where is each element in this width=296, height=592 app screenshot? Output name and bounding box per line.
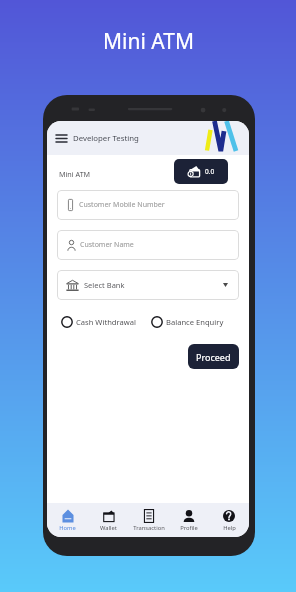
- button[interactable]: Select Bank: [57, 270, 239, 300]
- staticText: Mini ATM: [103, 27, 194, 56]
- button[interactable]: Menu: [53, 130, 69, 146]
- staticText: Select Bank: [84, 280, 125, 290]
- button[interactable]: Proceed: [188, 344, 239, 369]
- staticText: Cash Withdrawal: [76, 317, 136, 327]
- staticText: Balance Enquiry: [166, 317, 224, 327]
- button[interactable]: 0.0: [174, 159, 228, 184]
- staticText: Developer Testing: [73, 133, 139, 144]
- staticText: Customer Name: [80, 240, 134, 250]
- button[interactable]: Profile: [169, 503, 209, 537]
- button[interactable]: Transaction: [129, 503, 169, 537]
- staticText: Mini ATM: [59, 169, 91, 179]
- button[interactable]: Help: [209, 503, 249, 537]
- staticText: Wallet: [100, 524, 117, 532]
- button[interactable]: Home: [47, 503, 88, 537]
- button[interactable]: Balance Enquiry: [151, 316, 224, 328]
- staticText: Help: [223, 524, 236, 532]
- button[interactable]: Customer Name: [57, 230, 239, 260]
- staticText: Home: [59, 524, 76, 532]
- button[interactable]: Wallet: [88, 503, 129, 537]
- staticText: Profile: [180, 524, 198, 532]
- button[interactable]: Customer Mobile Number: [57, 190, 239, 220]
- staticText: 0.0: [205, 167, 215, 176]
- button[interactable]: Cash Withdrawal: [61, 316, 136, 328]
- staticText: Transaction: [133, 524, 165, 532]
- staticText: Proceed: [196, 351, 231, 363]
- staticText: Customer Mobile Number: [79, 200, 165, 210]
